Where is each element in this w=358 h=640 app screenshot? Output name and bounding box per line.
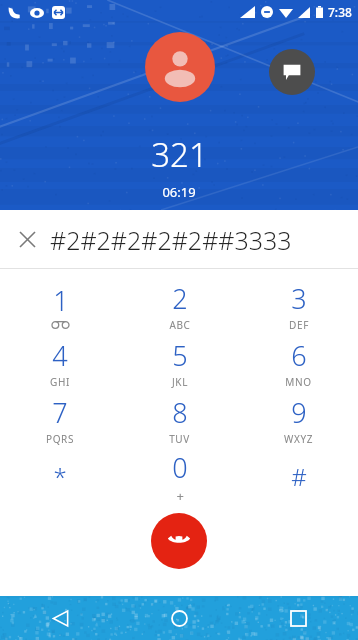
button[interactable]: Send message: [269, 49, 315, 95]
button[interactable]: 5: [120, 334, 239, 391]
button[interactable]: 0: [120, 448, 239, 505]
button[interactable]: 1: [0, 277, 120, 334]
staticText: 5: [172, 337, 188, 374]
button[interactable]: 4: [0, 334, 120, 391]
staticText: 7: [52, 394, 68, 431]
button[interactable]: 7: [0, 391, 120, 448]
staticText: MNO: [285, 375, 312, 389]
staticText: 8: [172, 394, 188, 431]
button[interactable]: 3: [239, 277, 358, 334]
button[interactable]: 6: [239, 334, 358, 391]
staticText: PQRS: [46, 432, 74, 446]
staticText: JKL: [172, 375, 188, 389]
button[interactable]: 8: [120, 391, 239, 448]
staticText: 9: [291, 394, 307, 431]
button[interactable]: Contact photo: [145, 32, 215, 102]
staticText: 0: [172, 449, 188, 486]
button[interactable]: Home: [144, 596, 214, 640]
staticText: 1: [53, 282, 69, 319]
button[interactable]: Clear: [8, 210, 46, 269]
button[interactable]: Recents: [263, 596, 333, 640]
staticText: WXYZ: [284, 432, 313, 446]
staticText: ABC: [169, 318, 191, 332]
staticText: 321: [151, 132, 208, 177]
staticText: TUV: [169, 432, 190, 446]
staticText: 6: [291, 337, 307, 374]
button[interactable]: End call: [151, 513, 207, 569]
staticText: 3: [291, 280, 307, 317]
button[interactable]: #: [239, 448, 358, 505]
staticText: DEF: [289, 318, 309, 332]
staticText: *: [53, 460, 67, 493]
staticText: #2#2#2#2#2##3333: [50, 223, 292, 257]
staticText: GHI: [50, 375, 70, 389]
staticText: 2: [172, 280, 188, 317]
button[interactable]: Back: [25, 596, 95, 640]
staticText: #: [291, 460, 307, 493]
button[interactable]: *: [0, 448, 120, 505]
staticText: 06:19: [162, 183, 196, 201]
staticText: 4: [52, 337, 68, 374]
button[interactable]: 2: [120, 277, 239, 334]
button[interactable]: 9: [239, 391, 358, 448]
staticText: +: [176, 487, 185, 505]
staticText: 7:38: [328, 4, 352, 20]
